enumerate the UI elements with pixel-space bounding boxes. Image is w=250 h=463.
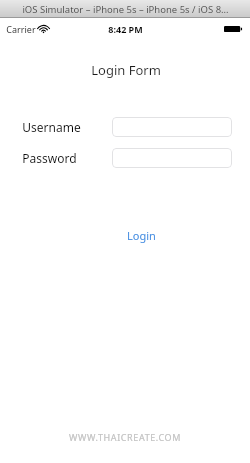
staticText: Carrier bbox=[6, 23, 36, 35]
staticText: Login Form bbox=[91, 61, 161, 79]
button[interactable]: Login bbox=[122, 225, 161, 246]
staticText: WWW.THAICREATE.COM bbox=[69, 431, 181, 443]
staticText: Username bbox=[22, 119, 81, 135]
staticText: Login bbox=[127, 228, 156, 243]
button[interactable]: Password bbox=[112, 148, 232, 168]
staticText: 8:42 PM bbox=[108, 23, 143, 35]
button[interactable]: Username bbox=[112, 117, 232, 137]
staticText: iOS Simulator – iPhone 5s – iPhone 5s / … bbox=[22, 3, 229, 16]
staticText: Password bbox=[22, 150, 77, 166]
